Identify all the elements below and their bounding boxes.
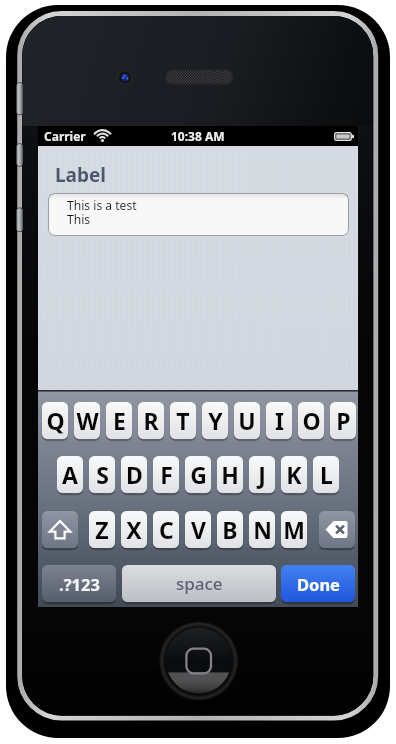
button[interactable]: A	[57, 456, 83, 493]
button[interactable]: I	[266, 402, 292, 439]
button[interactable]: B	[217, 511, 243, 548]
staticText: space	[176, 572, 223, 595]
button[interactable]: Label	[55, 162, 107, 188]
staticText: P	[336, 405, 351, 436]
staticText: Done	[297, 573, 340, 595]
button[interactable]: J	[249, 456, 275, 493]
staticText: Q	[46, 405, 65, 436]
staticText: X	[126, 514, 142, 545]
button[interactable]: .?123	[42, 565, 116, 602]
button[interactable]: X	[121, 511, 147, 548]
staticText: U	[238, 405, 256, 436]
button[interactable]: G	[185, 456, 211, 493]
button[interactable]: L	[313, 456, 339, 493]
button[interactable]: D	[121, 456, 147, 493]
staticText: E	[113, 405, 126, 436]
staticText: C	[159, 514, 174, 545]
button[interactable]: H	[217, 456, 243, 493]
button[interactable]: T	[170, 402, 196, 439]
button[interactable]: This is a test This	[48, 193, 349, 236]
button[interactable]: V	[185, 511, 211, 548]
staticText: This is a test This	[67, 197, 137, 228]
button[interactable]: O	[298, 402, 324, 439]
button[interactable]: Shift	[42, 511, 78, 548]
button[interactable]: P	[330, 402, 356, 439]
staticText: G	[190, 459, 207, 490]
staticText: F	[160, 459, 173, 490]
staticText: V	[191, 514, 206, 545]
staticText: R	[143, 405, 159, 436]
button[interactable]: Delete	[319, 511, 355, 548]
staticText: M	[283, 514, 305, 545]
staticText: Carrier	[44, 128, 86, 144]
button[interactable]: E	[106, 402, 132, 439]
button[interactable]: Y	[202, 402, 228, 439]
staticText: J	[258, 459, 266, 490]
button[interactable]: W	[74, 402, 100, 439]
button[interactable]: N	[249, 511, 275, 548]
button[interactable]: K	[281, 456, 307, 493]
staticText: T	[176, 405, 190, 436]
button[interactable]: space	[122, 565, 276, 602]
staticText: O	[302, 405, 321, 436]
button[interactable]: F	[153, 456, 179, 493]
staticText: I	[275, 405, 284, 436]
staticText: W	[76, 405, 99, 436]
button[interactable]: Done	[281, 565, 355, 602]
button[interactable]: R	[138, 402, 164, 439]
button[interactable]: S	[89, 456, 115, 493]
staticText: B	[222, 514, 238, 545]
staticText: L	[320, 459, 333, 490]
staticText: .?123	[59, 573, 100, 595]
button[interactable]: C	[153, 511, 179, 548]
staticText: D	[126, 459, 143, 490]
staticText: K	[286, 459, 302, 490]
button[interactable]: U	[234, 402, 260, 439]
staticText: H	[221, 459, 239, 490]
staticText: A	[62, 459, 78, 490]
staticText: S	[96, 459, 109, 490]
button[interactable]: M	[281, 511, 307, 548]
button[interactable]: Q	[42, 402, 68, 439]
staticText: 10:38 AM	[171, 128, 225, 144]
staticText: Z	[95, 514, 109, 545]
button[interactable]: Z	[89, 511, 115, 548]
staticText: Y	[208, 405, 223, 436]
staticText: N	[253, 514, 272, 545]
